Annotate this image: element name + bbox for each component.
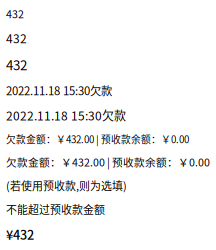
staticText: ¥432 — [6, 225, 34, 243]
staticText: 432 — [6, 55, 27, 74]
staticText: (若使用预收款,则为选填) — [6, 177, 127, 193]
staticText: 2022.11.18 15:30欠款 — [6, 106, 126, 124]
staticText: 2022.11.18 15:30欠款 — [6, 82, 112, 98]
staticText: 欠款金额：￥432.00 | 预收款余额：￥0.00 — [6, 154, 210, 169]
staticText: 欠款金额：￥432.00 | 预收款余额：￥0.00 — [6, 132, 189, 146]
staticText: 不能超过预收款金额 — [6, 201, 105, 217]
staticText: 432 — [6, 29, 27, 47]
staticText: 432 — [6, 6, 24, 21]
